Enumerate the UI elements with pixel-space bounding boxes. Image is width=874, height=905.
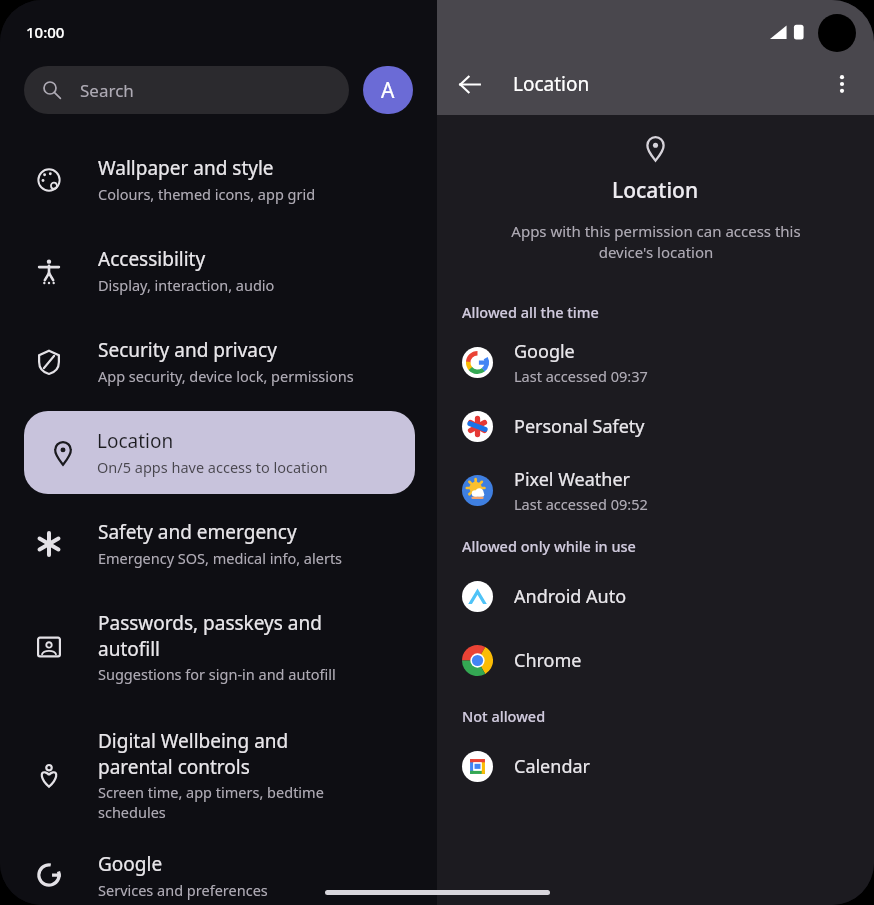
button[interactable]: Google [0, 845, 437, 905]
staticText: Search [80, 79, 134, 102]
staticText: On/5 apps have access to location [97, 457, 328, 477]
staticText: Google [98, 851, 163, 877]
staticText: Digital Wellbeing and parental controls [98, 728, 289, 779]
staticText: Location [612, 176, 699, 205]
staticText: Suggestions for sign-in and autofill [98, 664, 336, 684]
staticText: Passwords, passkeys and autofill [98, 610, 322, 661]
button[interactable]: Account [363, 66, 413, 114]
button[interactable]: Back [441, 56, 497, 112]
staticText: Location [97, 428, 174, 454]
staticText: Apps with this permission can access thi… [511, 221, 801, 263]
staticText: Personal Safety [514, 414, 645, 439]
staticText: Android Auto [514, 584, 627, 609]
button[interactable]: More options [816, 58, 868, 110]
button[interactable]: Search [24, 66, 349, 114]
staticText: Services and preferences [98, 880, 268, 900]
staticText: Allowed all the time [462, 302, 599, 322]
staticText: Colours, themed icons, app grid [98, 184, 316, 204]
staticText: Safety and emergency [98, 519, 297, 545]
staticText: Calendar [514, 754, 590, 779]
button[interactable]: Pixel Weather [437, 458, 874, 522]
staticText: Allowed only while in use [462, 536, 636, 556]
button[interactable]: Chrome [437, 628, 874, 692]
staticText: Last accessed 09:52 [514, 494, 648, 514]
button[interactable]: Safety and emergency [0, 498, 437, 589]
staticText: Screen time, app timers, bedtime schedul… [98, 782, 324, 822]
button[interactable]: Android Auto [437, 564, 874, 628]
button[interactable]: Passwords, passkeys and autofill [0, 589, 437, 705]
staticText: Google [514, 339, 575, 364]
button[interactable]: Wallpaper and style [0, 134, 437, 225]
staticText: Chrome [514, 648, 582, 673]
staticText: 10:00 [26, 22, 65, 42]
staticText: Not allowed [462, 706, 546, 726]
staticText: Display, interaction, audio [98, 275, 275, 295]
button[interactable]: Accessibility [0, 225, 437, 316]
staticText: App security, device lock, permissions [98, 366, 354, 386]
staticText: Security and privacy [98, 337, 277, 363]
staticText: Emergency SOS, medical info, alerts [98, 548, 343, 568]
button[interactable]: Location [24, 411, 415, 494]
staticText: Last accessed 09:37 [514, 366, 648, 386]
button[interactable]: Digital Wellbeing and parental controls [0, 705, 437, 845]
button[interactable]: Calendar [437, 734, 874, 798]
staticText: Accessibility [98, 246, 206, 272]
button[interactable]: Personal Safety [437, 394, 874, 458]
button[interactable]: Google [437, 330, 874, 394]
staticText: Wallpaper and style [98, 155, 274, 181]
staticText: A [381, 76, 395, 105]
staticText: Location [513, 71, 590, 97]
button[interactable]: Security and privacy [0, 316, 437, 407]
staticText: Pixel Weather [514, 467, 631, 492]
